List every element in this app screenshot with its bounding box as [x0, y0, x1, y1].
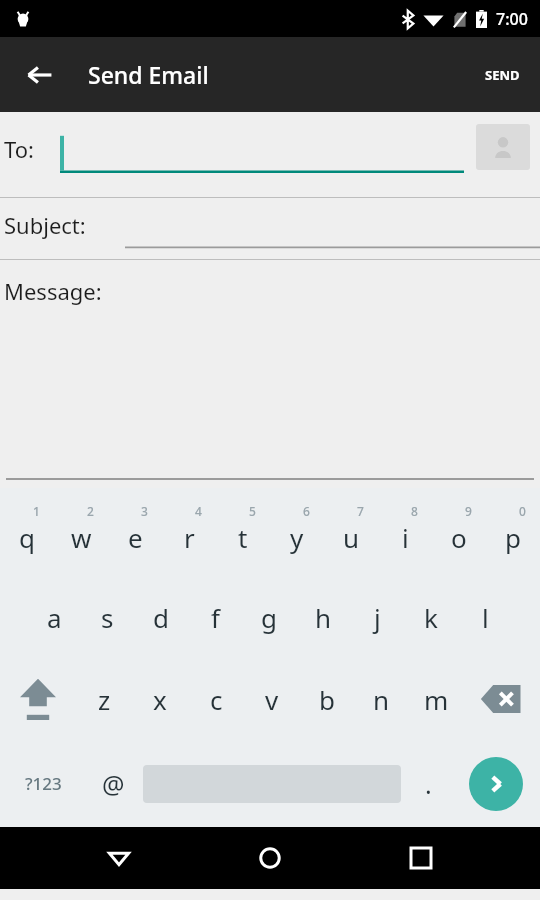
staticText: Subject: — [4, 210, 86, 240]
staticText: 8 — [411, 503, 418, 519]
button[interactable]: s — [81, 576, 134, 658]
button[interactable]: 6 — [270, 488, 324, 576]
button[interactable]: f — [188, 576, 242, 658]
staticText: l — [482, 600, 489, 635]
staticText: r — [184, 520, 195, 555]
button[interactable]: h — [296, 576, 350, 658]
button[interactable]: 8 — [378, 488, 432, 576]
staticText: o — [451, 520, 467, 555]
staticText: p — [505, 520, 521, 555]
staticText: d — [153, 600, 169, 635]
staticText: 7 — [357, 503, 364, 519]
button[interactable]: j — [350, 576, 404, 658]
staticText: Send Email — [88, 59, 209, 90]
button[interactable]: 2 — [54, 488, 108, 576]
button[interactable]: k — [404, 576, 458, 658]
staticText: SEND — [485, 66, 520, 84]
button[interactable]: n — [354, 658, 409, 740]
button[interactable]: l — [458, 576, 512, 658]
button[interactable]: Hide keyboard — [87, 827, 151, 889]
button[interactable]: Back — [14, 49, 66, 101]
button[interactable]: Enter — [452, 740, 540, 827]
staticText: a — [47, 600, 62, 635]
staticText: 7:00 — [496, 8, 528, 30]
button[interactable]: 7 — [324, 488, 378, 576]
button[interactable]: . — [404, 740, 452, 827]
button[interactable]: SEND — [473, 50, 532, 100]
button[interactable]: z — [76, 658, 132, 740]
button[interactable] — [58, 125, 464, 185]
staticText: j — [374, 600, 381, 635]
staticText: m — [424, 682, 449, 717]
staticText: 5 — [249, 503, 256, 519]
staticText: k — [424, 600, 438, 635]
button[interactable]: Choose contact — [476, 124, 530, 170]
staticText: . — [425, 767, 432, 801]
staticText: q — [19, 520, 35, 555]
staticText: x — [153, 682, 167, 717]
staticText: Message: — [4, 276, 102, 306]
button[interactable]: c — [188, 658, 244, 740]
button[interactable]: v — [244, 658, 299, 740]
staticText: f — [211, 600, 220, 635]
button[interactable]: Backspace — [464, 658, 540, 740]
staticText: i — [402, 520, 409, 555]
staticText: @ — [102, 767, 125, 801]
button[interactable]: 4 — [162, 488, 216, 576]
button[interactable]: a — [28, 576, 81, 658]
staticText: 4 — [195, 503, 202, 519]
button[interactable]: ?123 — [0, 740, 86, 827]
staticText: e — [128, 520, 143, 555]
staticText: y — [290, 520, 304, 555]
staticText: ?123 — [25, 772, 62, 795]
staticText: z — [98, 682, 111, 717]
button[interactable]: 9 — [432, 488, 486, 576]
staticText: s — [101, 600, 114, 635]
staticText: g — [261, 600, 277, 635]
button[interactable]: b — [299, 658, 354, 740]
staticText: u — [343, 520, 360, 555]
staticText: h — [315, 600, 332, 635]
staticText: 1 — [33, 503, 40, 519]
button[interactable]: Message: — [0, 260, 540, 488]
button[interactable]: m — [409, 658, 464, 740]
button[interactable]: d — [134, 576, 188, 658]
button[interactable]: x — [132, 658, 188, 740]
button[interactable]: Recents — [389, 827, 453, 889]
staticText: 3 — [141, 503, 148, 519]
staticText: t — [238, 520, 248, 555]
staticText: 9 — [465, 503, 472, 519]
button[interactable]: @ — [86, 740, 140, 827]
staticText: To: — [4, 134, 34, 164]
button[interactable] — [125, 206, 540, 252]
button[interactable]: 1 — [0, 488, 54, 576]
button[interactable]: 0 — [486, 488, 540, 576]
button[interactable]: 3 — [108, 488, 162, 576]
staticText: b — [319, 682, 335, 717]
staticText: 0 — [519, 503, 526, 519]
staticText: c — [210, 682, 223, 717]
button[interactable]: 5 — [216, 488, 270, 576]
staticText: w — [71, 520, 92, 555]
button[interactable]: Home — [238, 827, 302, 889]
staticText: n — [373, 682, 390, 717]
staticText: v — [265, 682, 279, 717]
button[interactable]: Shift — [0, 658, 76, 740]
staticText: 6 — [303, 503, 310, 519]
staticText: 2 — [87, 503, 94, 519]
button[interactable]: g — [242, 576, 296, 658]
